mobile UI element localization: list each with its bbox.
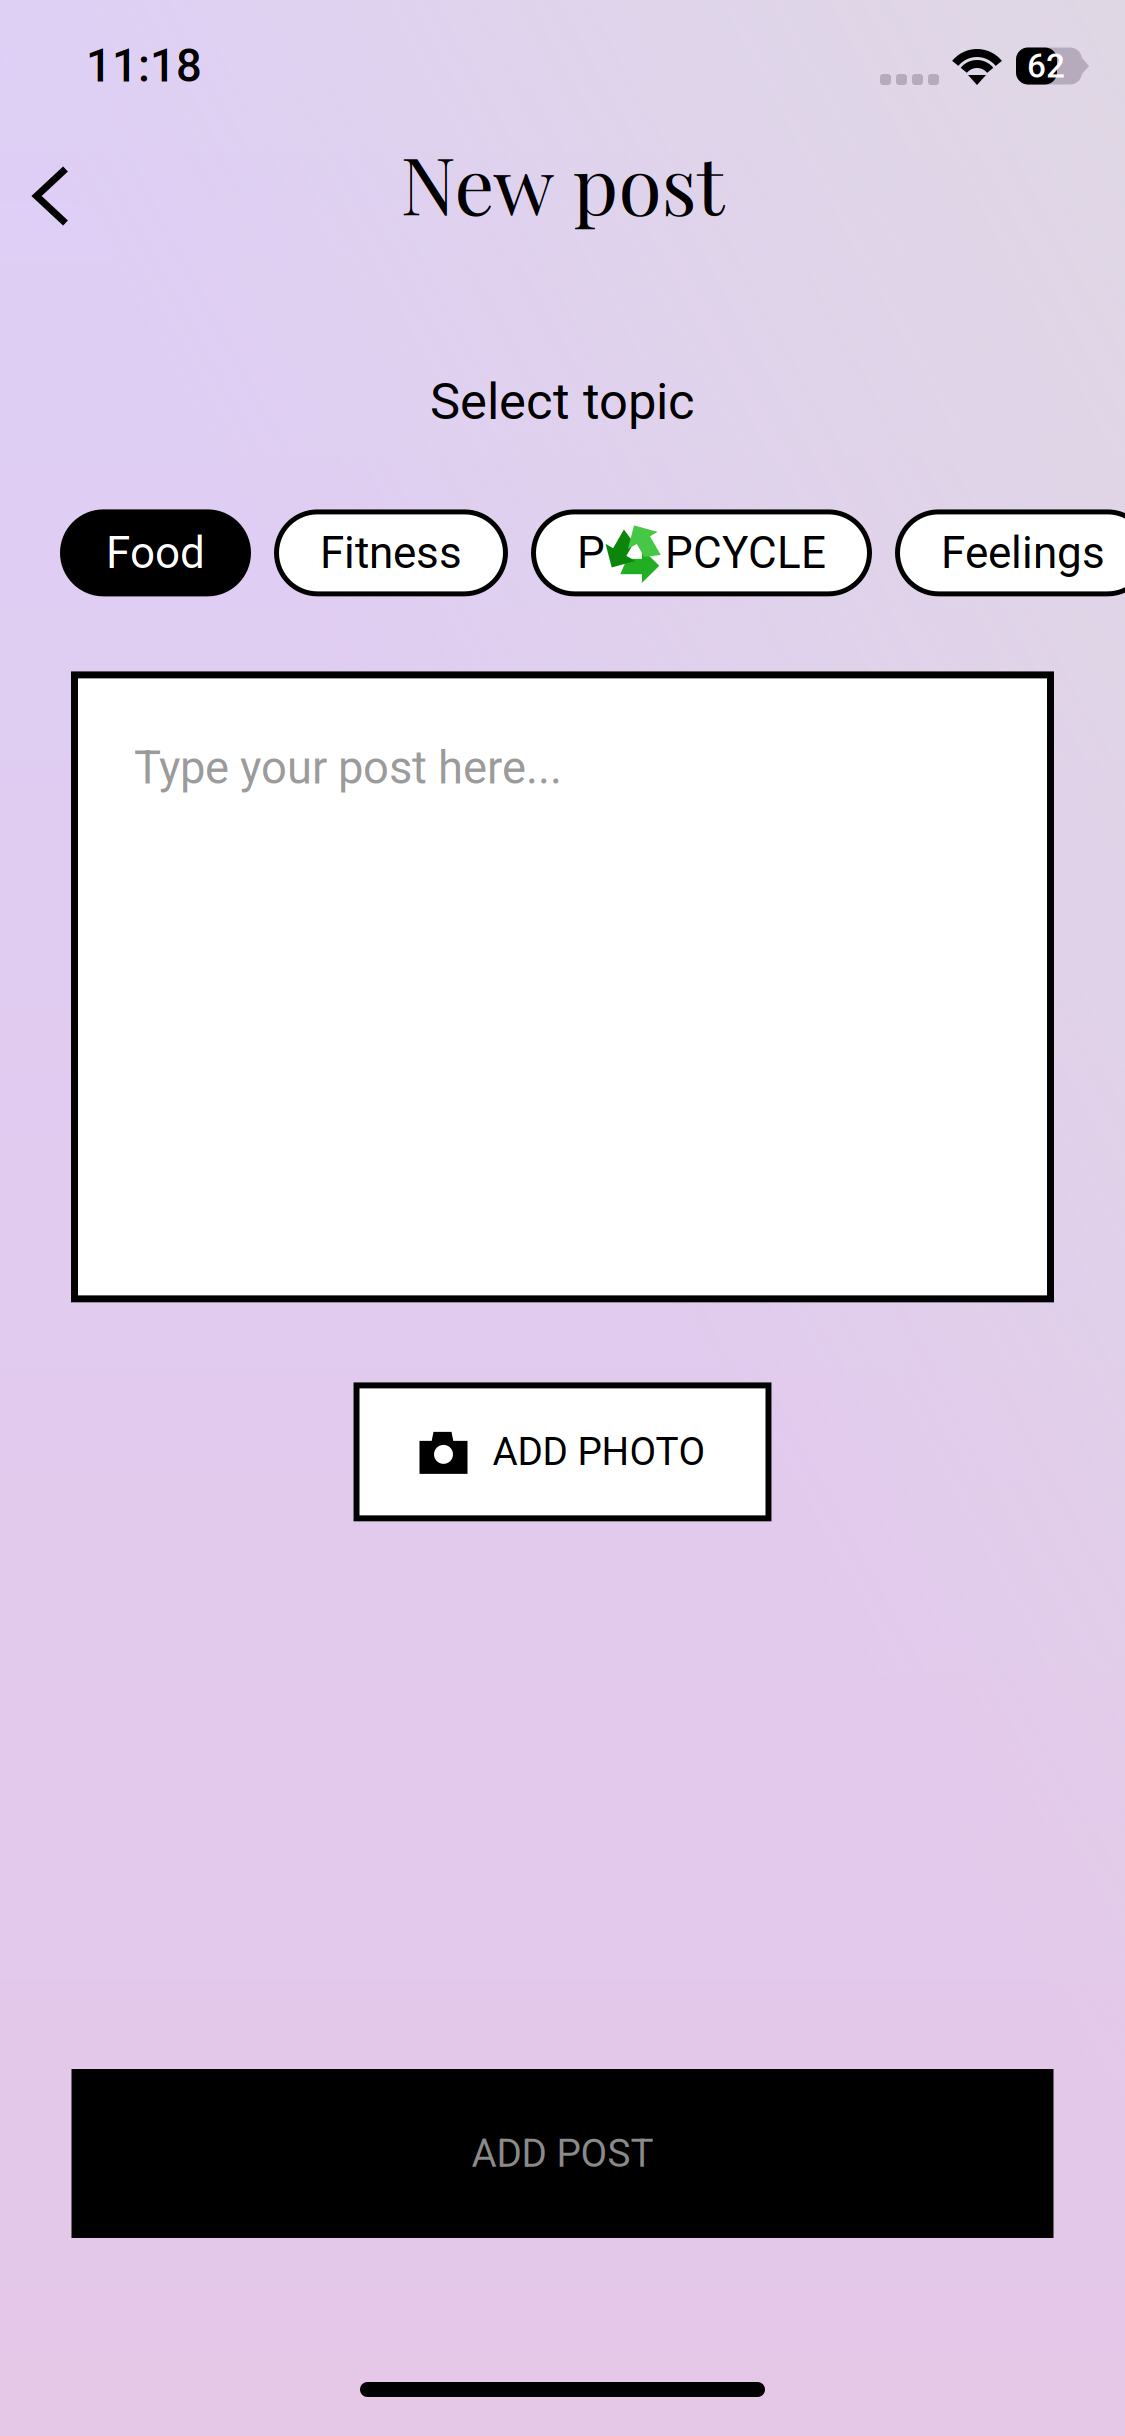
button[interactable]: Food — [60, 509, 251, 596]
button[interactable]: ADD PHOTO — [353, 1382, 771, 1521]
button[interactable]: ADD POST — [71, 2069, 1053, 2238]
staticText: Type your post here... — [134, 741, 562, 794]
staticText: 62 — [1027, 46, 1065, 86]
staticText: New post — [400, 130, 724, 235]
staticText: ADD PHOTO — [492, 1429, 705, 1474]
staticText: Select topic — [430, 372, 695, 431]
staticText: Feelings — [941, 527, 1105, 579]
button[interactable]: Fitness — [274, 509, 508, 596]
staticText: Food — [106, 527, 205, 579]
button[interactable]: Feelings — [895, 509, 1125, 596]
button[interactable]: Back — [8, 140, 94, 252]
staticText: Fitness — [320, 527, 462, 579]
staticText: PCYCLE — [665, 527, 826, 579]
staticText: 11:18 — [86, 39, 202, 92]
staticText: P — [577, 527, 605, 579]
staticText: ADD POST — [471, 2131, 653, 2176]
button[interactable]: P — [531, 509, 872, 596]
